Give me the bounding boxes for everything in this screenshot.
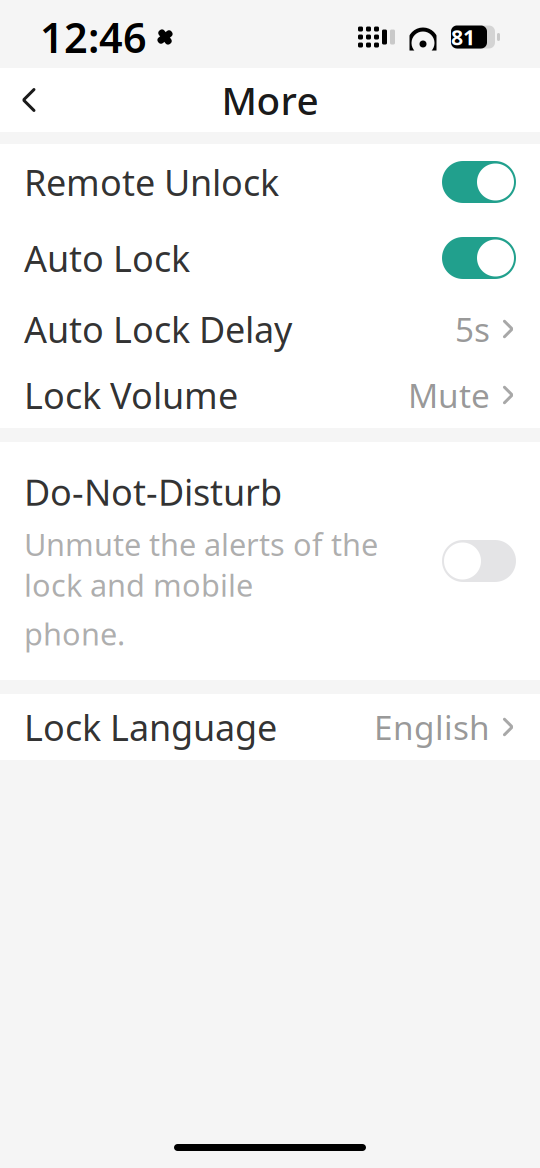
button[interactable]: Back [0, 71, 58, 129]
staticText: English [374, 705, 490, 749]
staticText: Lock Volume [24, 371, 238, 419]
button[interactable]: Auto Lock Delay [0, 296, 540, 362]
staticText: phone. [24, 613, 125, 654]
staticText: Unmute the alerts of the lock and mobile [24, 524, 378, 605]
staticText: Auto Lock Delay [24, 305, 292, 353]
staticText: 81 [451, 23, 475, 51]
staticText: 12:46 [40, 10, 147, 64]
button[interactable]: Remote Unlock [0, 144, 540, 220]
staticText: More [221, 74, 318, 126]
button[interactable]: Do-Not-Disturb [0, 442, 540, 680]
button[interactable]: Lock Language [0, 694, 540, 760]
staticText: Mute [408, 373, 490, 417]
staticText: Do-Not-Disturb [24, 468, 282, 516]
staticText: Auto Lock [24, 234, 190, 282]
button[interactable]: Auto Lock [0, 220, 540, 296]
staticText: Remote Unlock [24, 158, 279, 206]
staticText: 5s [455, 307, 490, 351]
button[interactable]: Lock Volume [0, 362, 540, 428]
staticText: Lock Language [24, 703, 277, 751]
